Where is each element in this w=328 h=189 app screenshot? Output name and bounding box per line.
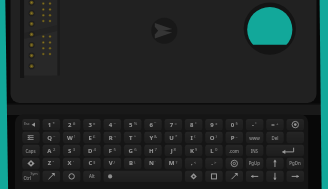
button[interactable]: Camera (244, 3, 296, 55)
button[interactable]: Keyboard (15, 114, 309, 189)
button[interactable]: Contact pins (24, 0, 58, 78)
button[interactable]: Motorola logo (151, 17, 178, 44)
